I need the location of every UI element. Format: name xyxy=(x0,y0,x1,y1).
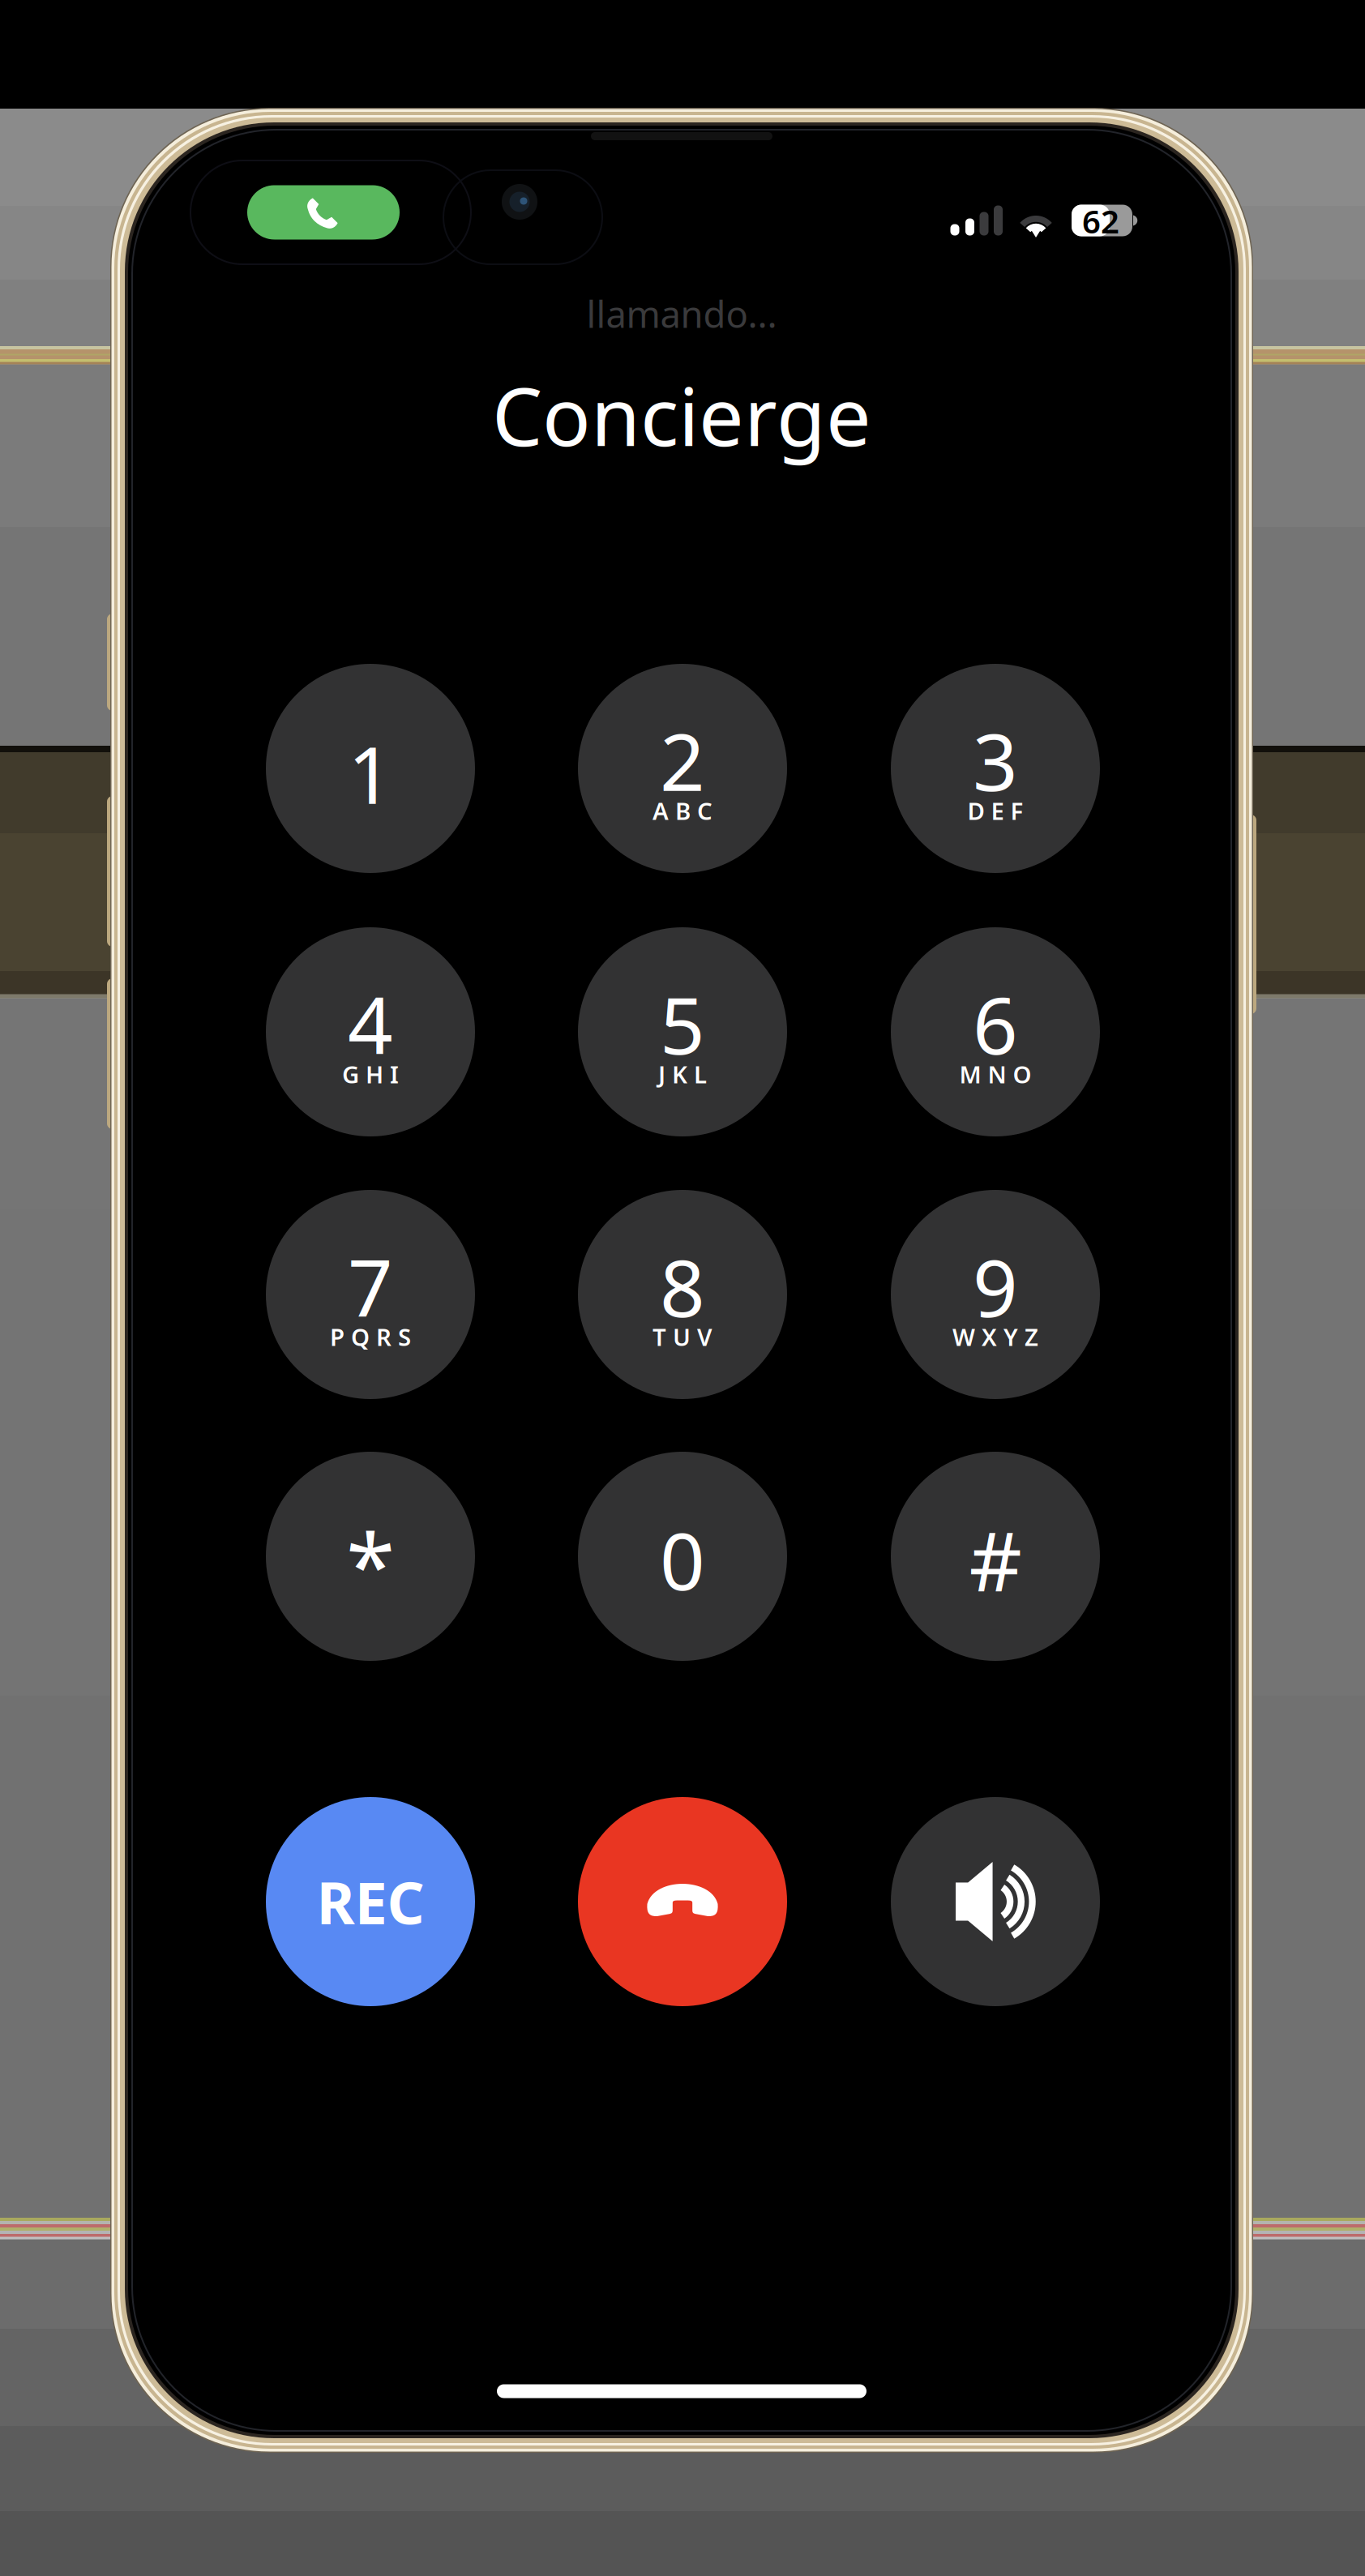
staticText: A B C xyxy=(653,795,712,826)
staticText: 6 xyxy=(973,971,1018,1076)
staticText: P Q R S xyxy=(330,1321,411,1352)
button[interactable]: 3 xyxy=(891,664,1100,873)
button[interactable]: Speaker xyxy=(891,1797,1100,2006)
button[interactable]: 5 xyxy=(578,927,787,1136)
staticText: T U V xyxy=(653,1321,712,1352)
staticText: 3 xyxy=(973,708,1018,813)
staticText: G H I xyxy=(342,1058,399,1090)
staticText: 62 xyxy=(1082,199,1119,242)
button[interactable]: 0 xyxy=(578,1452,787,1661)
staticText: J K L xyxy=(658,1058,707,1090)
button[interactable]: 9 xyxy=(891,1190,1100,1399)
staticText: W X Y Z xyxy=(952,1321,1038,1352)
staticText: llamando... xyxy=(586,289,777,338)
button[interactable]: * xyxy=(266,1452,475,1661)
staticText: 0 xyxy=(660,1507,705,1612)
button[interactable]: 2 xyxy=(578,664,787,873)
button[interactable]: 1 xyxy=(266,664,475,873)
staticText: 9 xyxy=(973,1234,1018,1339)
staticText: 2 xyxy=(660,708,705,813)
staticText: 7 xyxy=(348,1234,393,1339)
staticText: REC xyxy=(317,1863,424,1940)
staticText: D E F xyxy=(967,795,1023,826)
button[interactable]: REC xyxy=(266,1797,475,2006)
staticText: 5 xyxy=(660,971,705,1076)
button[interactable]: 4 xyxy=(266,927,475,1136)
button[interactable]: Return to call xyxy=(247,185,400,240)
staticText: Concierge xyxy=(492,362,871,468)
button[interactable]: End call xyxy=(578,1797,787,2006)
button[interactable]: 7 xyxy=(266,1190,475,1399)
staticText: * xyxy=(346,1506,395,1623)
staticText: 8 xyxy=(660,1234,705,1339)
staticText: M N O xyxy=(959,1058,1031,1090)
button[interactable]: 8 xyxy=(578,1190,787,1399)
button[interactable]: 6 xyxy=(891,927,1100,1136)
staticText: 4 xyxy=(348,971,393,1076)
button[interactable]: # xyxy=(891,1452,1100,1661)
staticText: # xyxy=(969,1505,1022,1614)
staticText: 1 xyxy=(348,721,393,826)
